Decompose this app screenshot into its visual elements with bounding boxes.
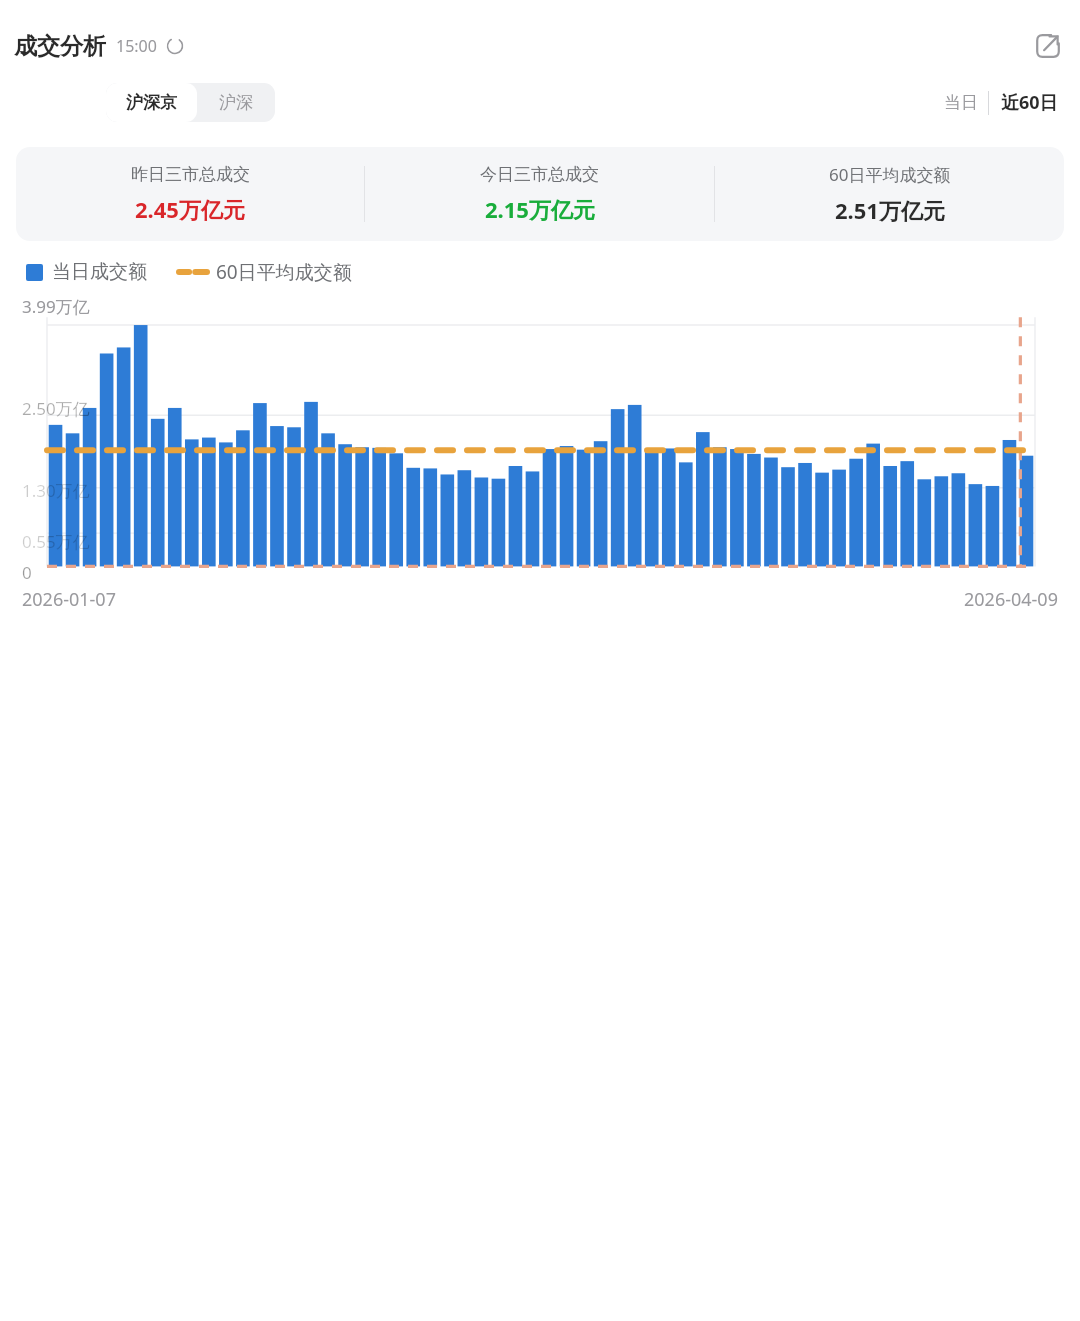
staticText: 0.55万亿 bbox=[22, 530, 90, 553]
staticText: 60日平均成交额 bbox=[216, 259, 352, 285]
staticText: 成交分析 bbox=[14, 32, 106, 61]
staticText: 昨日三市总成交 bbox=[131, 164, 250, 185]
staticText: 0 bbox=[22, 561, 32, 584]
staticText: 当日成交额 bbox=[52, 260, 147, 284]
button[interactable]: 近60日 bbox=[989, 82, 1070, 123]
button[interactable]: 沪深京 bbox=[106, 83, 197, 122]
staticText: 2.45万亿元 bbox=[135, 194, 245, 224]
staticText: 1.30万亿 bbox=[22, 479, 90, 502]
staticText: 2026-04-09 bbox=[964, 587, 1058, 612]
staticText: 60日平均成交额 bbox=[829, 163, 951, 186]
staticText: 沪深 bbox=[219, 92, 253, 113]
staticText: 2026-01-07 bbox=[22, 587, 116, 612]
staticText: 15:00 bbox=[116, 35, 157, 57]
button[interactable]: Refresh bbox=[164, 35, 186, 57]
button[interactable]: 沪深 bbox=[197, 83, 275, 122]
button[interactable]: 当日 bbox=[934, 84, 988, 121]
staticText: 2.15万亿元 bbox=[485, 194, 595, 224]
staticText: 近60日 bbox=[1001, 90, 1058, 115]
staticText: 当日 bbox=[944, 92, 978, 113]
staticText: 3.99万亿 bbox=[22, 295, 90, 318]
staticText: 今日三市总成交 bbox=[480, 164, 599, 185]
staticText: 2.50万亿 bbox=[22, 397, 90, 420]
staticText: 沪深京 bbox=[126, 92, 177, 113]
staticText: 2.51万亿元 bbox=[835, 195, 945, 225]
button[interactable]: Share bbox=[1028, 26, 1068, 66]
